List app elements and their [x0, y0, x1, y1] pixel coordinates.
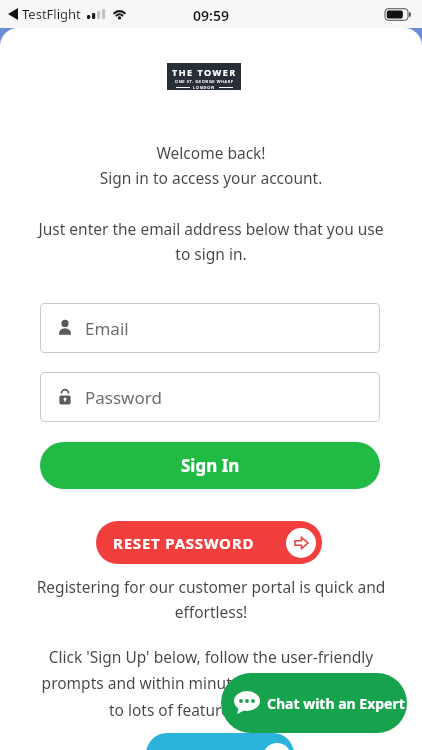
- staticText: Just enter the email address below that …: [0, 218, 422, 265]
- staticText: Email: [85, 317, 129, 340]
- staticText: Chat with an Expert: [267, 694, 405, 713]
- staticText: RESET PASSWORD: [113, 533, 255, 553]
- staticText: Registering for our customer portal is q…: [0, 576, 422, 623]
- staticText: TestFlight: [22, 5, 81, 23]
- staticText: Click 'Sign Up' below, follow the user-f…: [0, 646, 422, 721]
- staticText: Welcome back! Sign in to access your acc…: [0, 142, 422, 189]
- staticText: Sign In: [181, 454, 240, 477]
- staticText: LONDON: [193, 85, 216, 90]
- staticText: 09:59: [193, 6, 229, 25]
- staticText: Password: [85, 386, 162, 409]
- staticText: ONE ST. GEORGE WHARF: [175, 79, 234, 84]
- staticText: THE TOWER: [172, 66, 237, 78]
